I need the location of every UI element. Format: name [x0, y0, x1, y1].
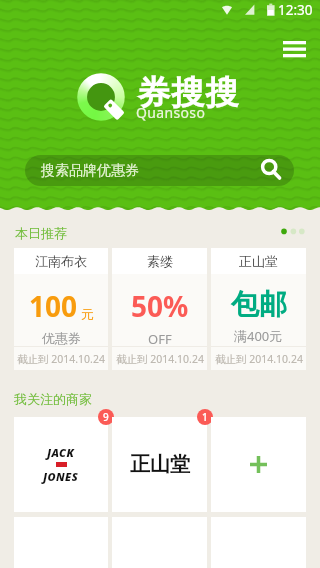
staticText: 正山堂 — [130, 452, 190, 477]
button[interactable]: 素缕 — [112, 248, 207, 370]
staticText: 100 — [29, 287, 78, 325]
button[interactable]: 正山堂 — [112, 417, 207, 512]
staticText: 正山堂 — [239, 253, 278, 269]
staticText: 搜索品牌优惠券 — [41, 162, 139, 180]
staticText: 券搜搜 — [137, 72, 240, 114]
staticText: 江南布衣 — [35, 253, 87, 269]
staticText: 9 — [103, 410, 109, 424]
staticText: 元 — [81, 306, 94, 322]
button[interactable]: 搜索品牌优惠券 — [25, 155, 294, 186]
staticText: 截止到 2014.10.24 — [17, 352, 105, 366]
staticText: 优惠券 — [42, 330, 81, 346]
staticText: JONES — [43, 469, 79, 484]
staticText: JACK — [47, 445, 75, 460]
other: Search — [259, 159, 283, 183]
staticText: 素缕 — [147, 253, 173, 269]
staticText: OFF — [148, 330, 172, 346]
other: Add shop — [250, 456, 267, 473]
staticText: 我关注的商家 — [14, 391, 92, 407]
staticText: Quansoso — [136, 103, 206, 122]
button[interactable]: Menu — [279, 34, 309, 64]
staticText: 12:30 — [278, 1, 313, 19]
button[interactable]: 江南布衣 — [14, 248, 108, 370]
staticText: 满400元 — [234, 327, 283, 345]
staticText: 1 — [202, 410, 208, 424]
staticText: 截止到 2014.10.24 — [215, 352, 303, 366]
button[interactable]: Add shop — [211, 417, 306, 512]
staticText: 包邮 — [231, 287, 287, 322]
staticText: 本日推荐 — [15, 225, 67, 241]
staticText: 截止到 2014.10.24 — [116, 352, 204, 366]
button[interactable]: JACK — [14, 417, 108, 512]
staticText: 50% — [131, 287, 189, 325]
button[interactable]: 正山堂 — [211, 248, 306, 370]
